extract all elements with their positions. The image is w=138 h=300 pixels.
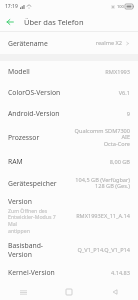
staticText: 8,00 GB [69, 158, 130, 166]
staticText: V6.1 [69, 89, 130, 97]
button[interactable]: Version [0, 194, 138, 238]
button[interactable]: RAM [0, 151, 138, 172]
staticText: 9 [69, 110, 130, 118]
staticText: RAM [8, 157, 23, 166]
staticText: RMX1993EX_11_A.14 [69, 212, 130, 220]
staticText: Modell [8, 67, 30, 76]
staticText: Qualcomm SDM7300 AIE Octa-Core [69, 127, 130, 148]
staticText: ColorOS-Version [8, 88, 61, 97]
staticText: 4.14.83 [69, 269, 130, 277]
staticText: Gerätespeicher [8, 179, 57, 188]
staticText: RMX1993 [69, 68, 130, 76]
staticText: 100 [117, 4, 124, 9]
button[interactable]: Startbildschirm [46, 284, 92, 300]
button[interactable]: Letzte Apps [0, 284, 46, 300]
button[interactable]: Prozessor [0, 124, 138, 151]
button[interactable]: Modell [0, 61, 138, 82]
staticText: Android-Version [8, 109, 60, 118]
staticText: Zum Öffnen des Entwickler-Modus 7 Mal an… [8, 207, 66, 235]
staticText: 17:19 [5, 3, 18, 10]
staticText: Prozessor [8, 133, 40, 142]
staticText: Gerätename [8, 39, 48, 48]
button[interactable]: Kernel-Version [0, 262, 138, 283]
staticText: Über das Telefon [24, 17, 84, 27]
button[interactable]: Gerätespeicher [0, 172, 138, 194]
button[interactable]: Zurück [3, 15, 17, 29]
staticText: realme X2 [65, 39, 122, 47]
button[interactable]: Gerätename [0, 32, 138, 54]
button[interactable]: ColorOS-Version [0, 82, 138, 103]
staticText: Version [8, 197, 32, 206]
staticText: Q_V1_P14.Q_V1_P14 [69, 246, 130, 254]
button[interactable]: Android-Version [0, 103, 138, 124]
staticText: Basisband-Version [8, 241, 66, 259]
button[interactable]: Basisband-Version [0, 238, 138, 262]
staticText: Kernel-Version [8, 268, 55, 277]
button[interactable]: Zurück [92, 284, 138, 300]
staticText: 104,5 GB (Verfügbar) 128 GB (Ges.) [69, 176, 130, 190]
